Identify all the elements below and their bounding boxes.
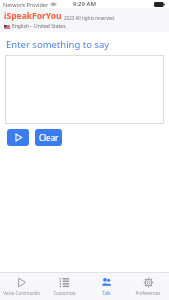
button[interactable]: Talk — [85, 273, 127, 300]
staticText: Voice Commands — [3, 290, 40, 296]
staticText: iSpeakForYou — [4, 10, 62, 22]
button[interactable] — [5, 55, 164, 124]
staticText: Clear — [39, 132, 59, 143]
staticText: Preferences — [135, 290, 161, 296]
button[interactable]: Preferences — [127, 273, 169, 300]
staticText: Talk — [102, 290, 111, 296]
staticText: English – United States — [12, 23, 66, 30]
staticText: Customize — [53, 290, 76, 296]
staticText: 9:29 AM — [73, 0, 96, 8]
button[interactable]: Clear — [35, 129, 62, 146]
button[interactable]: Speak — [7, 129, 29, 146]
staticText: 2023 All rights reserved. — [64, 15, 116, 21]
button[interactable]: Customize — [43, 273, 85, 300]
button[interactable]: Voice Commands — [0, 273, 43, 300]
staticText: Enter something to say — [6, 38, 110, 51]
staticText: Network Provider — [3, 1, 49, 8]
